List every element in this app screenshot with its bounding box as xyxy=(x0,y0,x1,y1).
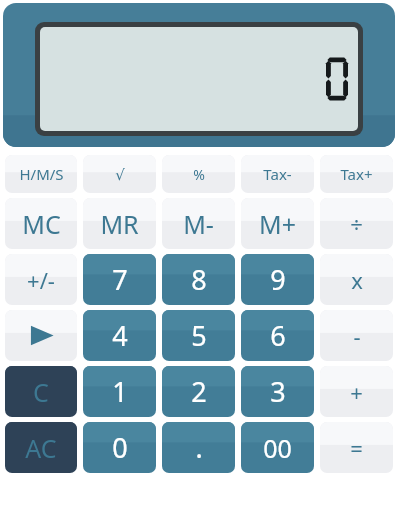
staticText: 5 xyxy=(191,317,207,354)
button[interactable]: = xyxy=(320,422,393,473)
staticText: 3 xyxy=(270,373,286,410)
button[interactable]: M- xyxy=(162,198,235,249)
staticText: ÷ xyxy=(350,209,363,239)
staticText: % xyxy=(193,165,205,184)
button[interactable]: 7 xyxy=(83,254,156,305)
staticText: AC xyxy=(25,431,57,465)
button[interactable]: MR xyxy=(83,198,156,249)
staticText: MC xyxy=(22,207,61,241)
button[interactable]: . xyxy=(162,422,235,473)
button[interactable]: AC xyxy=(5,422,77,473)
button[interactable]: x xyxy=(320,254,393,305)
staticText: H/M/S xyxy=(19,164,64,184)
button[interactable]: 8 xyxy=(162,254,235,305)
staticText: 00 xyxy=(263,431,292,465)
staticText: x xyxy=(351,265,363,295)
button[interactable]: +/- xyxy=(5,254,77,305)
button[interactable]: 6 xyxy=(241,310,314,361)
staticText: - xyxy=(353,321,361,351)
button[interactable]: Tax+ xyxy=(320,155,393,193)
staticText: . xyxy=(195,429,203,466)
staticText: 7 xyxy=(112,261,128,298)
staticText: = xyxy=(350,433,363,463)
button[interactable]: % xyxy=(162,155,235,193)
staticText: 0 xyxy=(112,429,128,466)
button[interactable]: 4 xyxy=(83,310,156,361)
staticText: √ xyxy=(115,166,125,183)
staticText: 6 xyxy=(270,317,286,354)
button[interactable]: H/M/S xyxy=(5,155,77,193)
button[interactable]: 00 xyxy=(241,422,314,473)
button[interactable]: Play xyxy=(5,310,77,361)
button[interactable]: MC xyxy=(5,198,77,249)
staticText: +/- xyxy=(27,265,55,295)
staticText: + xyxy=(350,377,363,407)
button[interactable]: M+ xyxy=(241,198,314,249)
staticText: M+ xyxy=(259,207,296,241)
staticText: MR xyxy=(100,207,139,241)
button[interactable]: 9 xyxy=(241,254,314,305)
button[interactable]: C xyxy=(5,366,77,417)
button[interactable]: 2 xyxy=(162,366,235,417)
button[interactable]: - xyxy=(320,310,393,361)
staticText: C xyxy=(33,375,49,409)
staticText: 1 xyxy=(112,373,128,410)
staticText: 9 xyxy=(270,261,286,298)
staticText: Tax+ xyxy=(340,164,373,184)
staticText: M- xyxy=(183,207,214,241)
button[interactable]: 1 xyxy=(83,366,156,417)
staticText: 2 xyxy=(191,373,207,410)
staticText: 4 xyxy=(112,317,128,354)
button[interactable]: 0 xyxy=(83,422,156,473)
button[interactable]: ÷ xyxy=(320,198,393,249)
button[interactable]: 5 xyxy=(162,310,235,361)
button[interactable]: √ xyxy=(83,155,156,193)
button[interactable]: 3 xyxy=(241,366,314,417)
staticText: 8 xyxy=(191,261,207,298)
button[interactable]: + xyxy=(320,366,393,417)
staticText: Tax- xyxy=(263,164,292,184)
button[interactable]: Tax- xyxy=(241,155,314,193)
